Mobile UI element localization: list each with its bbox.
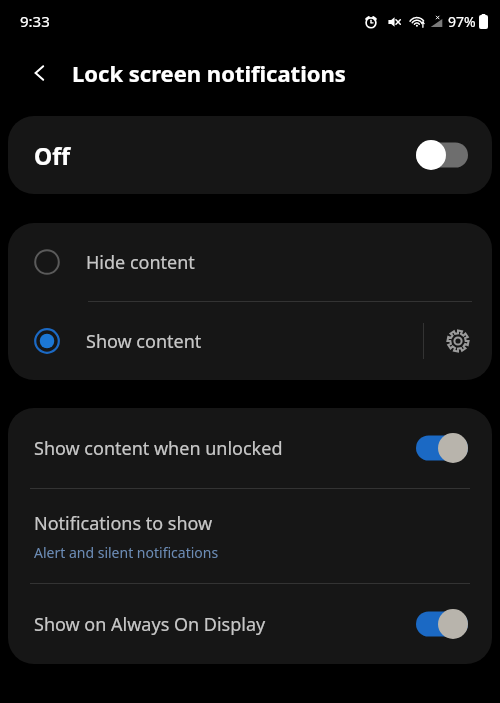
staticText: Show content (86, 329, 202, 354)
button[interactable]: Back (22, 55, 58, 91)
staticText: 9:33 (20, 11, 50, 31)
staticText: Lock screen notifications (72, 58, 346, 88)
button[interactable]: Show content when unlocked (8, 408, 492, 488)
button[interactable]: Show on Always On Display (8, 584, 492, 664)
button[interactable]: Notifications to show (8, 489, 492, 583)
staticText: Notifications to show (34, 511, 213, 536)
button[interactable]: Hide content (8, 223, 492, 301)
button[interactable]: Show content (8, 302, 423, 380)
staticText: Show content when unlocked (34, 436, 416, 461)
button[interactable]: Off (8, 116, 492, 194)
button[interactable]: Settings (424, 302, 492, 380)
staticText: Off (34, 140, 70, 171)
staticText: 97% (448, 12, 476, 31)
staticText: Alert and silent notifications (34, 543, 219, 562)
staticText: Hide content (86, 250, 195, 275)
staticText: Show on Always On Display (34, 612, 416, 637)
